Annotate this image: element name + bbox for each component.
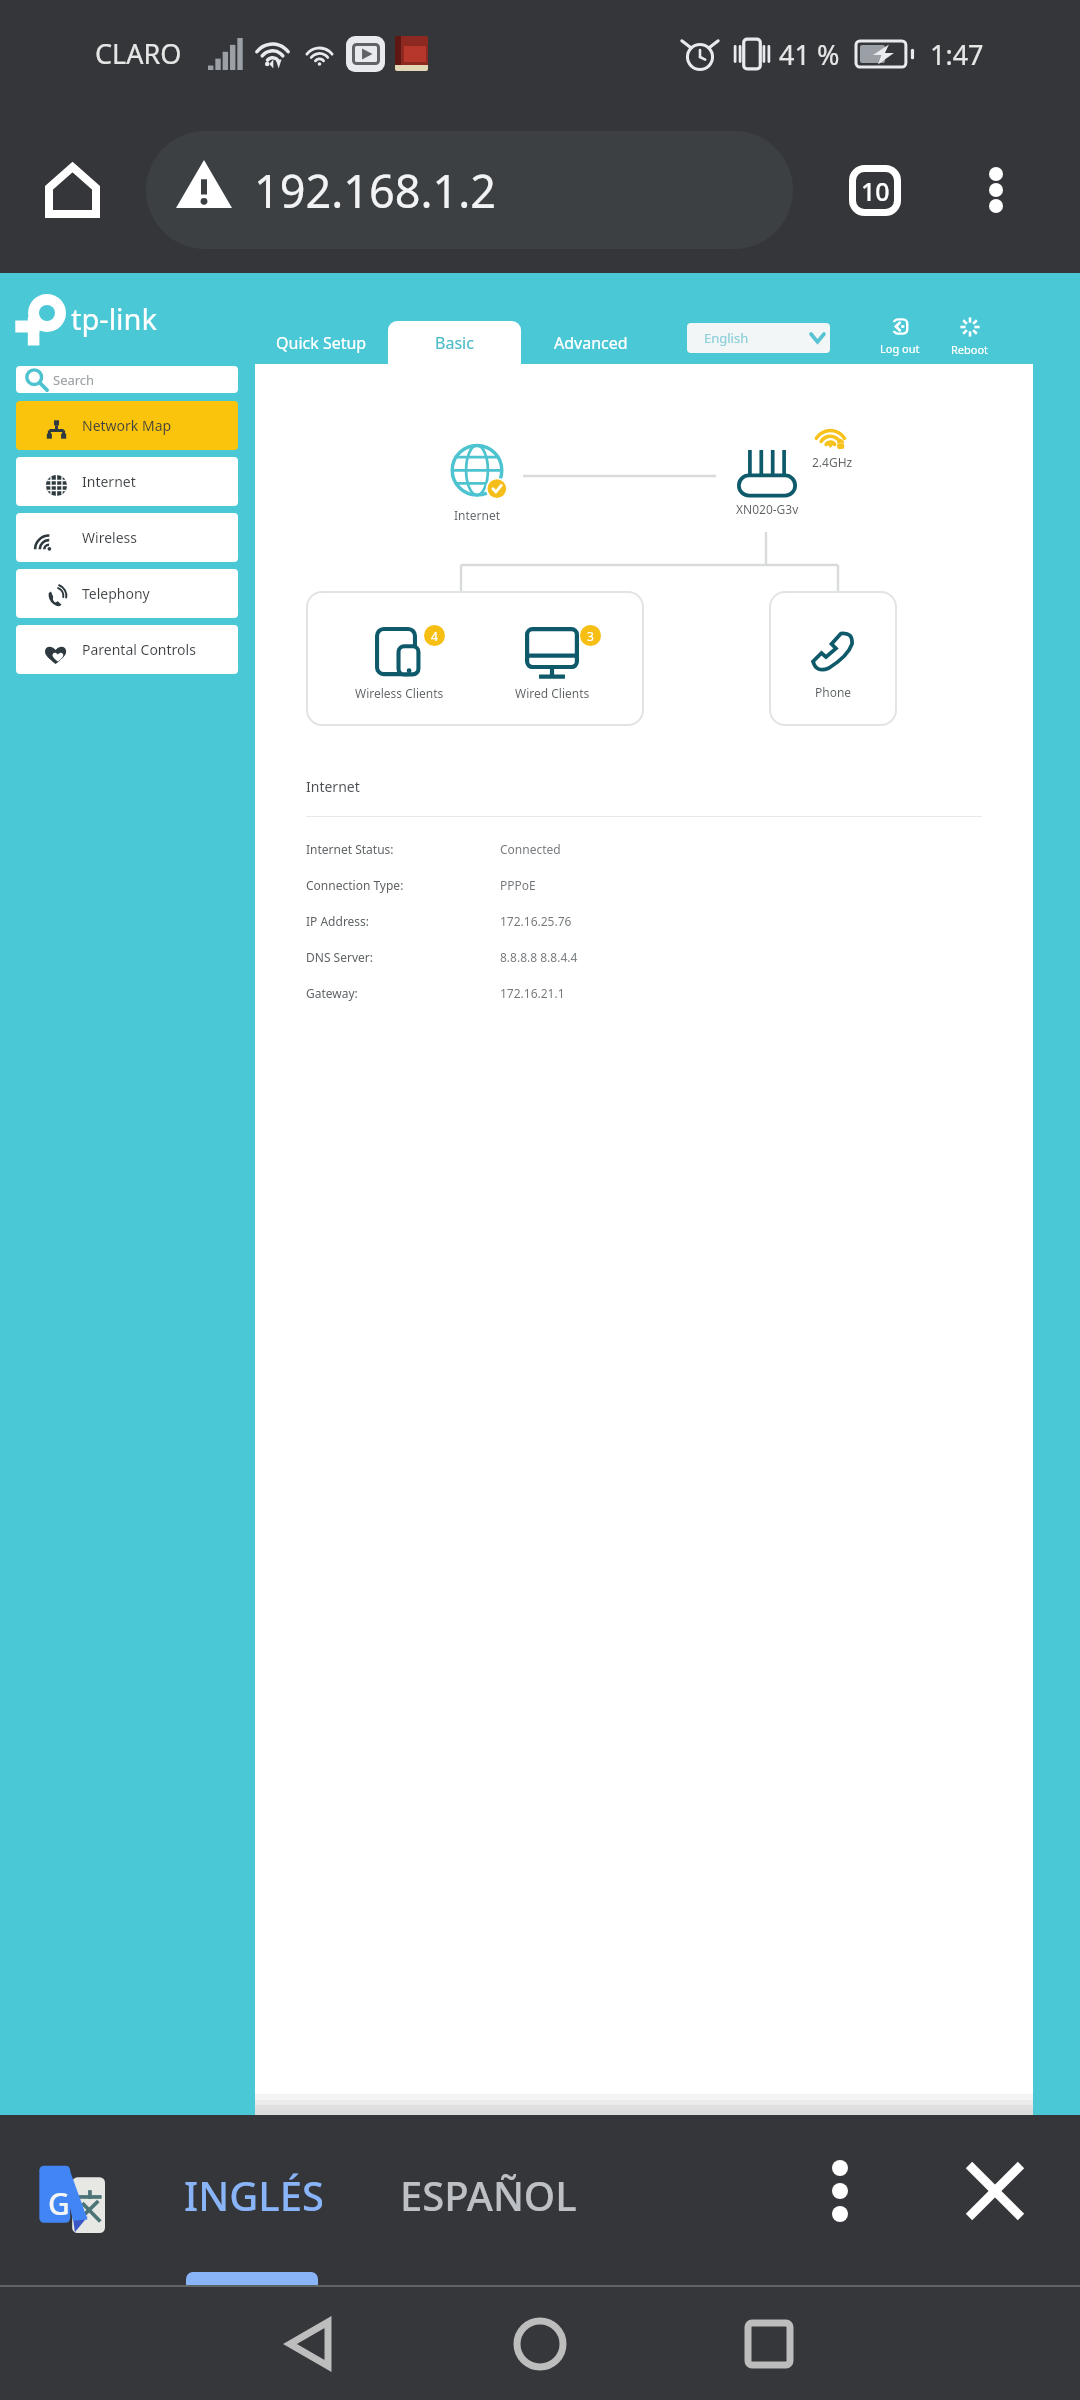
- button[interactable]: Phone: [769, 591, 897, 726]
- staticText: Internet Status:: [306, 841, 394, 857]
- button[interactable]: Home: [27, 145, 117, 235]
- button[interactable]: Reboot: [939, 317, 1001, 357]
- staticText: Log out: [880, 341, 920, 356]
- button[interactable]: Network Map: [16, 401, 238, 450]
- staticText: Wireless: [82, 528, 137, 547]
- button[interactable]: Translate options: [800, 2151, 880, 2231]
- button[interactable]: Recents: [728, 2303, 810, 2385]
- button[interactable]: Wireless: [16, 513, 238, 562]
- button[interactable]: More options: [950, 144, 1042, 236]
- button[interactable]: Search: [16, 366, 238, 393]
- button[interactable]: Parental Controls: [16, 625, 238, 674]
- button[interactable]: Log out: [869, 317, 931, 356]
- staticText: 172.16.25.76: [500, 913, 572, 929]
- staticText: 2.4GHz: [812, 454, 853, 470]
- staticText: Internet: [82, 472, 136, 491]
- staticText: Gateway:: [306, 985, 358, 1001]
- staticText: 172.16.21.1: [500, 985, 565, 1001]
- staticText: PPPoE: [500, 877, 536, 893]
- button[interactable]: Internet: [16, 457, 238, 506]
- staticText: Telephony: [82, 584, 150, 603]
- button[interactable]: Close: [955, 2151, 1035, 2231]
- button[interactable]: 4: [339, 591, 459, 726]
- staticText: 10: [861, 174, 890, 208]
- button[interactable]: Basic: [388, 321, 521, 364]
- staticText: Wired Clients: [515, 685, 590, 701]
- staticText: CLARO: [95, 35, 182, 72]
- button[interactable]: 4: [306, 591, 644, 726]
- button[interactable]: INGLÉS: [170, 2115, 322, 2285]
- staticText: 3: [587, 628, 594, 644]
- staticText: Quick Setup: [276, 332, 367, 354]
- staticText: Network Map: [82, 416, 172, 435]
- staticText: 8.8.8.8 8.8.4.4: [500, 949, 578, 965]
- staticText: Phone: [815, 684, 852, 700]
- staticText: English: [704, 329, 749, 347]
- staticText: ESPAÑOL: [400, 2168, 577, 2222]
- button[interactable]: English: [687, 323, 830, 353]
- staticText: XN020-G3v: [736, 501, 799, 517]
- button[interactable]: Advanced: [548, 321, 634, 365]
- button[interactable]: Home: [499, 2303, 581, 2385]
- staticText: Connection Type:: [306, 877, 404, 893]
- staticText: G: [48, 2183, 70, 2224]
- staticText: Connected: [500, 841, 561, 857]
- staticText: Parental Controls: [82, 640, 196, 659]
- staticText: 4: [431, 628, 438, 644]
- button[interactable]: Tabs: [829, 144, 921, 236]
- button[interactable]: Telephony: [16, 569, 238, 618]
- staticText: Reboot: [951, 342, 989, 357]
- button[interactable]: Back: [268, 2303, 350, 2385]
- button[interactable]: ESPAÑOL: [380, 2115, 590, 2285]
- button[interactable]: Quick Setup: [275, 321, 367, 365]
- staticText: tp-link: [71, 299, 158, 338]
- staticText: Search: [53, 371, 95, 389]
- staticText: Wireless Clients: [355, 685, 444, 701]
- staticText: Basic: [435, 332, 474, 354]
- staticText: DNS Server:: [306, 949, 373, 965]
- staticText: Internet: [306, 777, 360, 796]
- staticText: 192.168.1.2: [254, 160, 497, 221]
- staticText: IP Address:: [306, 913, 370, 929]
- staticText: Advanced: [554, 332, 628, 354]
- button[interactable]: 192.168.1.2: [146, 131, 793, 249]
- staticText: 1:47: [930, 36, 984, 73]
- staticText: 41 %: [779, 36, 840, 73]
- staticText: INGLÉS: [184, 2168, 322, 2222]
- staticText: Internet: [454, 507, 501, 523]
- button[interactable]: 3: [492, 591, 612, 726]
